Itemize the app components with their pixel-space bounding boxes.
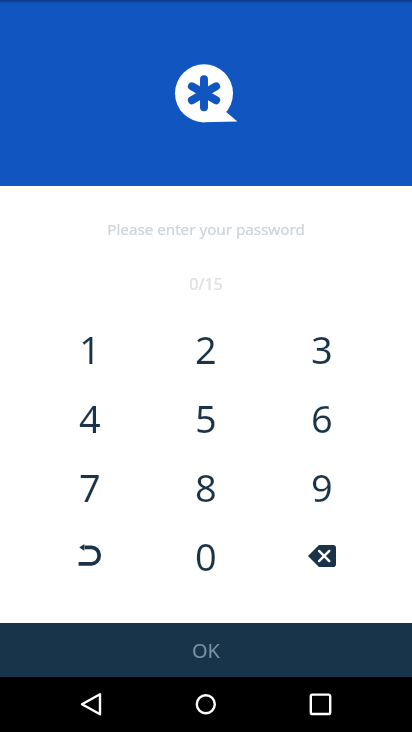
button[interactable]: 2 <box>148 314 264 383</box>
button[interactable]: Undo <box>32 521 148 590</box>
button[interactable]: 3 <box>264 314 380 383</box>
button[interactable]: 4 <box>32 383 148 452</box>
staticText: OK <box>192 637 220 664</box>
staticText: 7 <box>79 461 101 513</box>
button[interactable]: Recent apps <box>275 677 412 732</box>
staticText: 0/15 <box>0 273 412 295</box>
button[interactable]: 1 <box>32 314 148 383</box>
button[interactable]: 7 <box>32 452 148 521</box>
staticText: 4 <box>79 392 101 444</box>
button[interactable]: Delete <box>264 521 380 590</box>
staticText: Please enter your password <box>0 219 412 240</box>
staticText: 2 <box>195 323 217 375</box>
staticText: 6 <box>311 392 333 444</box>
staticText: 3 <box>311 323 333 375</box>
button[interactable]: 0 <box>148 521 264 590</box>
staticText: 5 <box>195 392 217 444</box>
staticText: 9 <box>311 461 333 513</box>
button[interactable]: Home <box>138 677 275 732</box>
button[interactable]: 5 <box>148 383 264 452</box>
button[interactable]: 8 <box>148 452 264 521</box>
staticText: 1 <box>79 323 101 375</box>
staticText: 0 <box>195 530 217 582</box>
staticText: 8 <box>195 461 217 513</box>
button[interactable]: Back <box>0 677 138 732</box>
button[interactable]: 9 <box>264 452 380 521</box>
button[interactable]: 6 <box>264 383 380 452</box>
button[interactable]: OK <box>0 623 412 677</box>
